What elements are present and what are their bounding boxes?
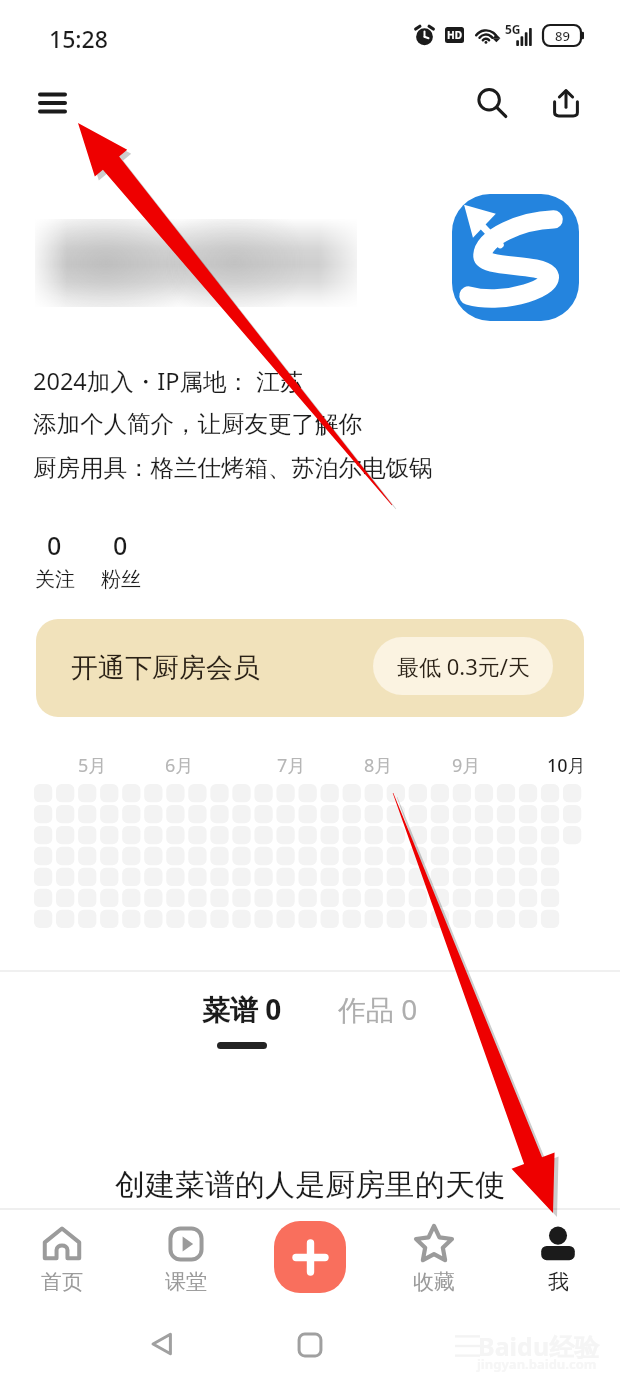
staticText: 厨房用具：格兰仕烤箱、苏泊尔电饭锅 <box>33 453 433 483</box>
staticText: 课堂 <box>165 1269 207 1295</box>
staticText: 9月 <box>452 753 481 778</box>
button[interactable]: 0 <box>33 528 76 592</box>
staticText: 菜谱 0 <box>202 990 282 1028</box>
button[interactable]: Search <box>469 80 514 125</box>
staticText: 收藏 <box>413 1269 455 1295</box>
staticText: 关注 <box>35 567 75 592</box>
staticText: 5G <box>505 21 521 37</box>
staticText: 7月 <box>277 753 306 778</box>
button[interactable]: Create recipe <box>274 1221 346 1293</box>
button[interactable]: 菜谱 0 <box>175 990 309 1060</box>
button[interactable]: 首页 <box>0 1210 124 1308</box>
staticText: 89 <box>555 27 570 45</box>
staticText: 15:28 <box>49 23 108 54</box>
staticText: 6月 <box>165 753 194 778</box>
button[interactable]: Profile avatar <box>452 194 579 321</box>
staticText: 开通下厨房会员 <box>71 651 260 685</box>
staticText: 添加个人简介，让厨友更了解你 <box>33 409 362 439</box>
staticText: 8月 <box>364 753 393 778</box>
staticText: 粉丝 <box>101 567 141 592</box>
button[interactable]: 作品 0 <box>311 990 445 1060</box>
button[interactable]: 收藏 <box>372 1210 496 1308</box>
staticText: 创建菜谱的人是厨房里的天使 <box>115 1166 505 1204</box>
staticText: Baidu经验 <box>478 1329 600 1363</box>
staticText: 最低 0.3元/天 <box>397 651 530 681</box>
staticText: HD <box>447 28 462 42</box>
button[interactable]: 课堂 <box>124 1210 248 1308</box>
staticText: 我 <box>548 1269 569 1295</box>
button[interactable]: 我 <box>496 1210 620 1308</box>
staticText: 2024加入・IP属地： 江苏 <box>33 365 304 397</box>
staticText: jingyan.baidu.com <box>477 1355 597 1373</box>
button[interactable]: Menu <box>28 79 76 127</box>
staticText: 首页 <box>41 1269 83 1295</box>
staticText: 作品 0 <box>338 990 418 1028</box>
button[interactable]: 0 <box>99 528 142 592</box>
button[interactable]: 开通下厨房会员 <box>36 619 584 717</box>
staticText: 0 <box>113 528 128 562</box>
staticText: 10月 <box>547 753 586 778</box>
staticText: 0 <box>47 528 62 562</box>
button[interactable]: Share <box>543 80 588 125</box>
staticText: 5月 <box>78 753 107 778</box>
